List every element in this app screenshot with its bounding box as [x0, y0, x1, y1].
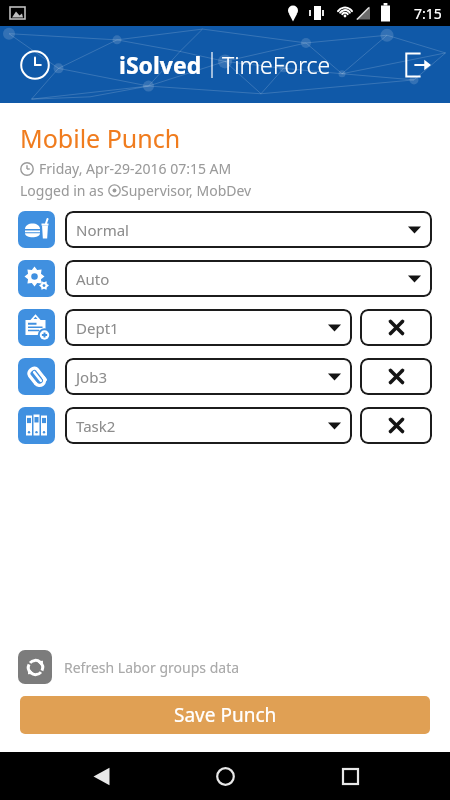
staticText: Logged in as	[20, 181, 108, 200]
staticText: Dept1	[76, 318, 119, 338]
staticText: 7:15	[414, 4, 442, 23]
button[interactable]: Department	[18, 309, 55, 346]
staticText: Auto	[76, 269, 110, 289]
button[interactable]: Home	[201, 752, 249, 800]
staticText: Mobile Punch	[20, 121, 181, 155]
staticText: Refresh Labor groups data	[64, 658, 240, 677]
button[interactable]: Auto	[65, 260, 432, 297]
button[interactable]: Log out	[398, 45, 438, 85]
button[interactable]: Clear Job	[360, 358, 432, 395]
staticText: Normal	[76, 220, 129, 240]
staticText: Job3	[76, 367, 107, 387]
button[interactable]: Job	[18, 358, 55, 395]
staticText: Friday, Apr-29-2016 07:15 AM	[39, 159, 232, 178]
button[interactable]: Clear Department	[360, 309, 432, 346]
staticText: Save Punch	[174, 702, 277, 728]
button[interactable]: Clear Task	[360, 407, 432, 444]
button[interactable]: Job3	[65, 358, 352, 395]
button[interactable]: Back	[77, 752, 125, 800]
button[interactable]: Punch type	[18, 211, 55, 248]
button[interactable]: Normal	[65, 211, 432, 248]
button[interactable]: Task2	[65, 407, 352, 444]
button[interactable]: Mode	[18, 260, 55, 297]
button[interactable]: Dept1	[65, 309, 352, 346]
button[interactable]: Clock	[15, 45, 55, 85]
staticText: Supervisor, MobDev	[121, 181, 252, 200]
staticText: TimeForce	[222, 49, 331, 80]
button[interactable]: Save Punch	[20, 696, 430, 734]
button[interactable]: Refresh Labor groups data	[18, 650, 432, 684]
staticText: Task2	[76, 416, 116, 436]
button[interactable]: Task	[18, 407, 55, 444]
button[interactable]: Recent apps	[326, 752, 374, 800]
staticText: iSolved	[119, 49, 202, 80]
